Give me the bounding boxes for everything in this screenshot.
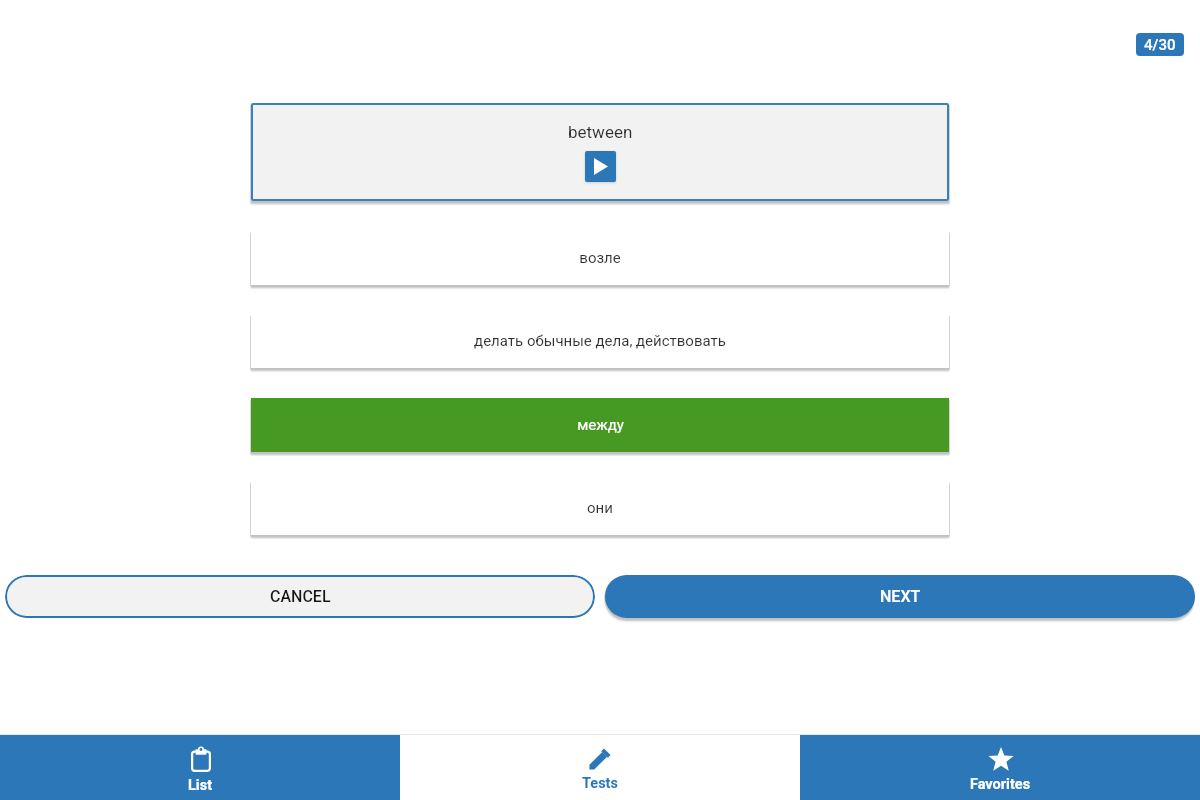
button[interactable]: Tests xyxy=(400,735,800,800)
button[interactable]: возле xyxy=(251,231,949,285)
button[interactable]: List xyxy=(0,735,400,800)
staticText: Tests xyxy=(582,775,618,792)
button[interactable]: между xyxy=(251,398,949,452)
staticText: они xyxy=(587,499,613,517)
staticText: делать обычные дела, действовать xyxy=(474,332,726,350)
button[interactable]: Question 4 of 30 xyxy=(1136,33,1184,56)
staticText: CANCEL xyxy=(270,587,331,606)
staticText: между xyxy=(577,416,624,434)
button[interactable]: NEXT xyxy=(605,575,1195,618)
button[interactable]: они xyxy=(251,481,949,535)
staticText: between xyxy=(568,122,633,142)
button[interactable]: between xyxy=(251,103,949,201)
staticText: возле xyxy=(579,249,621,267)
button[interactable]: делать обычные дела, действовать xyxy=(251,314,949,368)
staticText: List xyxy=(188,777,213,794)
button[interactable]: Play pronunciation xyxy=(585,151,616,182)
staticText: 4/30 xyxy=(1144,36,1176,54)
staticText: Favorites xyxy=(970,776,1031,793)
staticText: NEXT xyxy=(880,587,921,606)
button[interactable]: CANCEL xyxy=(5,575,595,618)
button[interactable]: Favorites xyxy=(800,735,1200,800)
